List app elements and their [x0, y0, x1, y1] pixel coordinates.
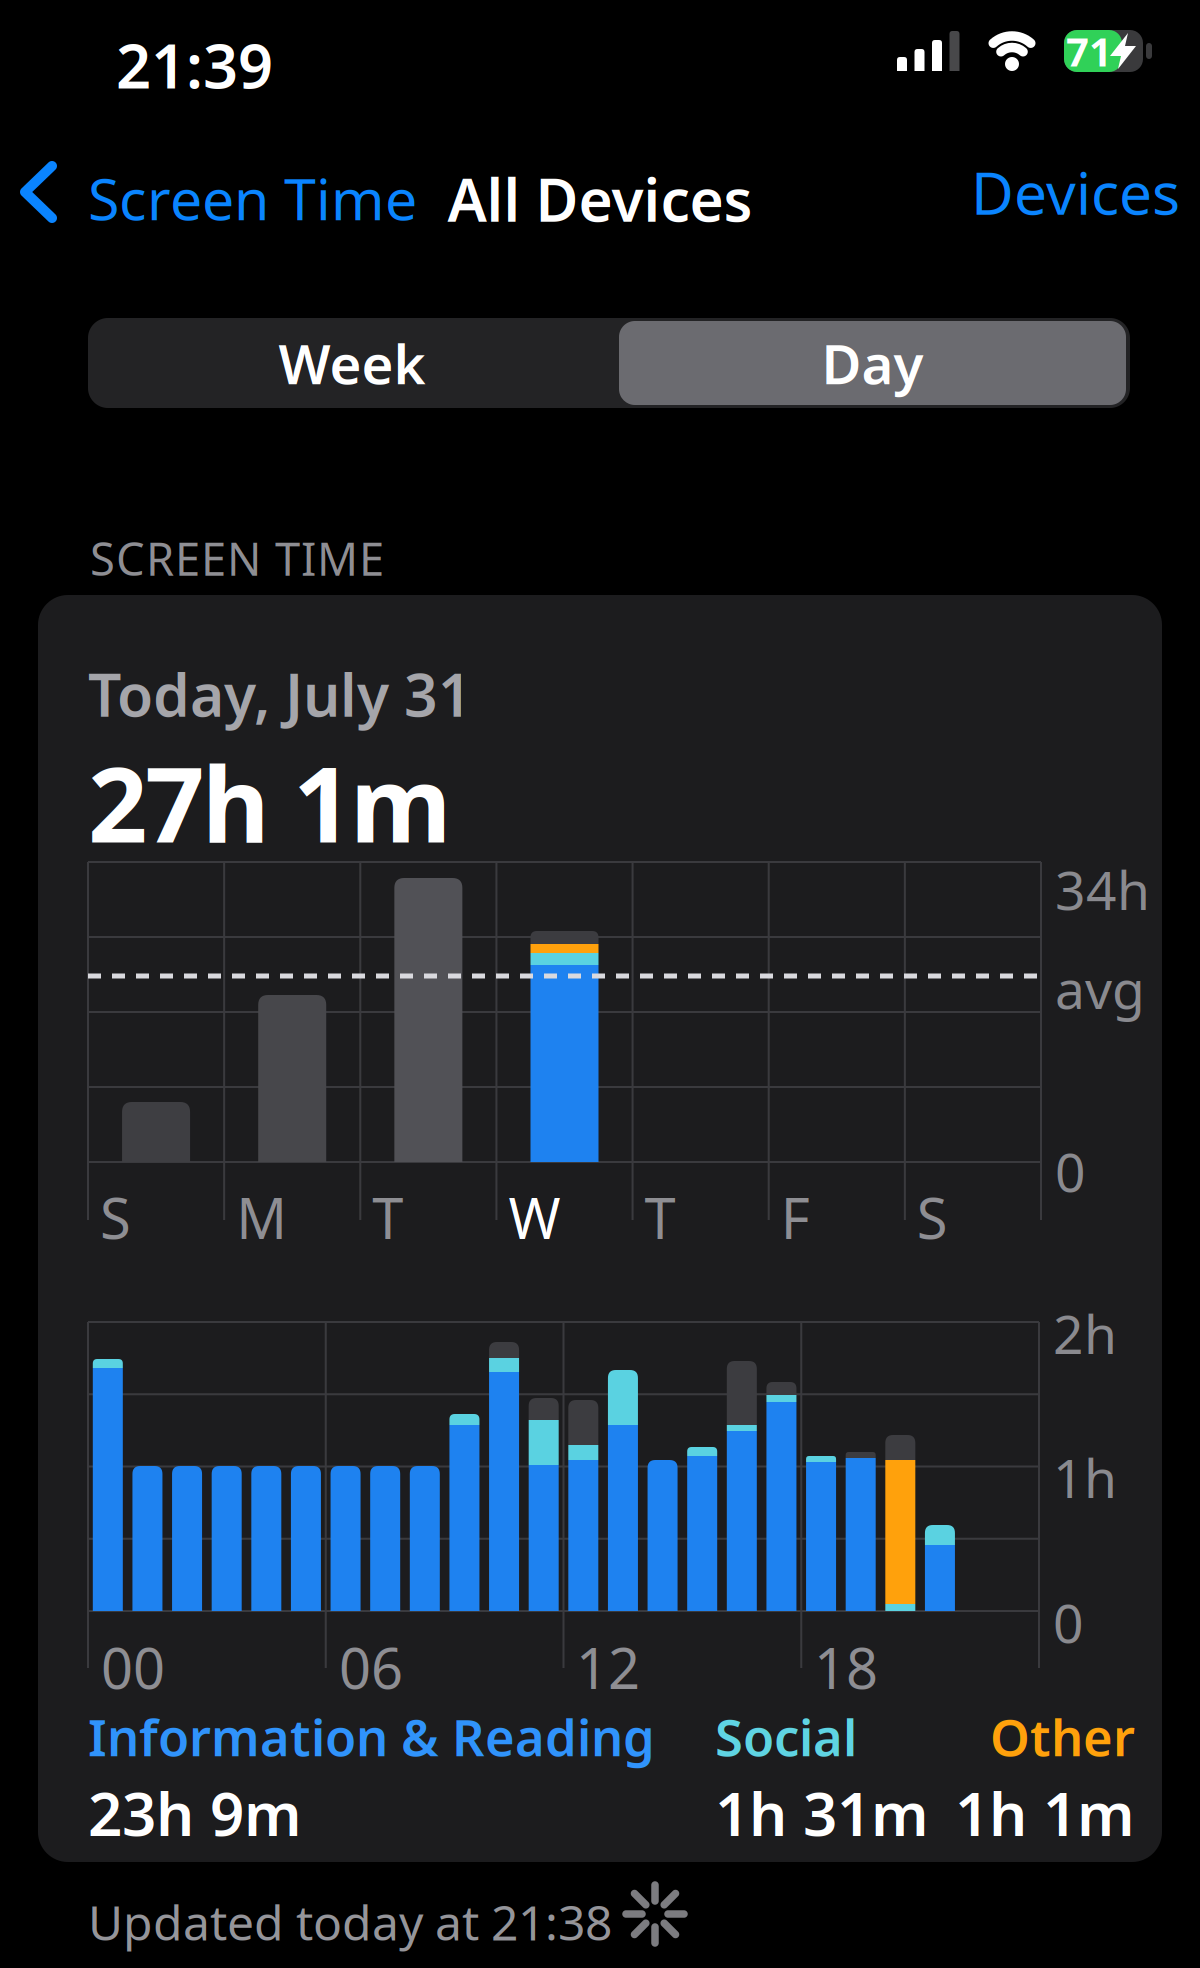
button[interactable]: Day: [619, 321, 1126, 405]
staticText: 27h 1m: [88, 733, 451, 871]
staticText: 1h 1m: [955, 1773, 1135, 1853]
staticText: Week: [278, 327, 425, 399]
staticText: 2h: [1053, 1298, 1117, 1369]
staticText: 23h 9m: [88, 1773, 302, 1853]
staticText: avg: [1055, 953, 1145, 1024]
staticText: Devices: [971, 153, 1180, 231]
staticText: 0: [1053, 1587, 1084, 1658]
staticText: 0: [1055, 1136, 1086, 1207]
staticText: Other: [990, 1703, 1135, 1770]
staticText: 71: [1066, 24, 1112, 77]
staticText: 1h: [1053, 1442, 1117, 1513]
staticText: Updated today at 21:38: [88, 1890, 612, 1954]
staticText: All Devices: [447, 160, 752, 238]
button[interactable]: Devices: [780, 152, 1180, 232]
staticText: Information & Reading: [88, 1703, 655, 1770]
staticText: 06: [339, 1630, 403, 1704]
staticText: Screen Time: [88, 160, 417, 236]
staticText: T: [645, 1180, 676, 1254]
staticText: Today, July 31: [88, 655, 472, 733]
staticText: F: [781, 1180, 810, 1254]
button[interactable]: Week: [92, 318, 612, 408]
staticText: Social: [715, 1703, 857, 1770]
staticText: S: [100, 1180, 131, 1254]
staticText: T: [372, 1180, 403, 1254]
staticText: W: [508, 1180, 560, 1254]
button[interactable]: Screen Time: [18, 152, 418, 232]
staticText: 18: [814, 1630, 878, 1704]
staticText: S: [917, 1180, 948, 1254]
staticText: 1h 31m: [715, 1773, 929, 1853]
staticText: SCREEN TIME: [90, 528, 384, 588]
staticText: 21:39: [116, 24, 273, 105]
staticText: Day: [821, 327, 923, 399]
staticText: 12: [576, 1630, 640, 1704]
staticText: 34h: [1055, 854, 1150, 925]
staticText: M: [236, 1180, 287, 1254]
staticText: 00: [101, 1630, 165, 1704]
